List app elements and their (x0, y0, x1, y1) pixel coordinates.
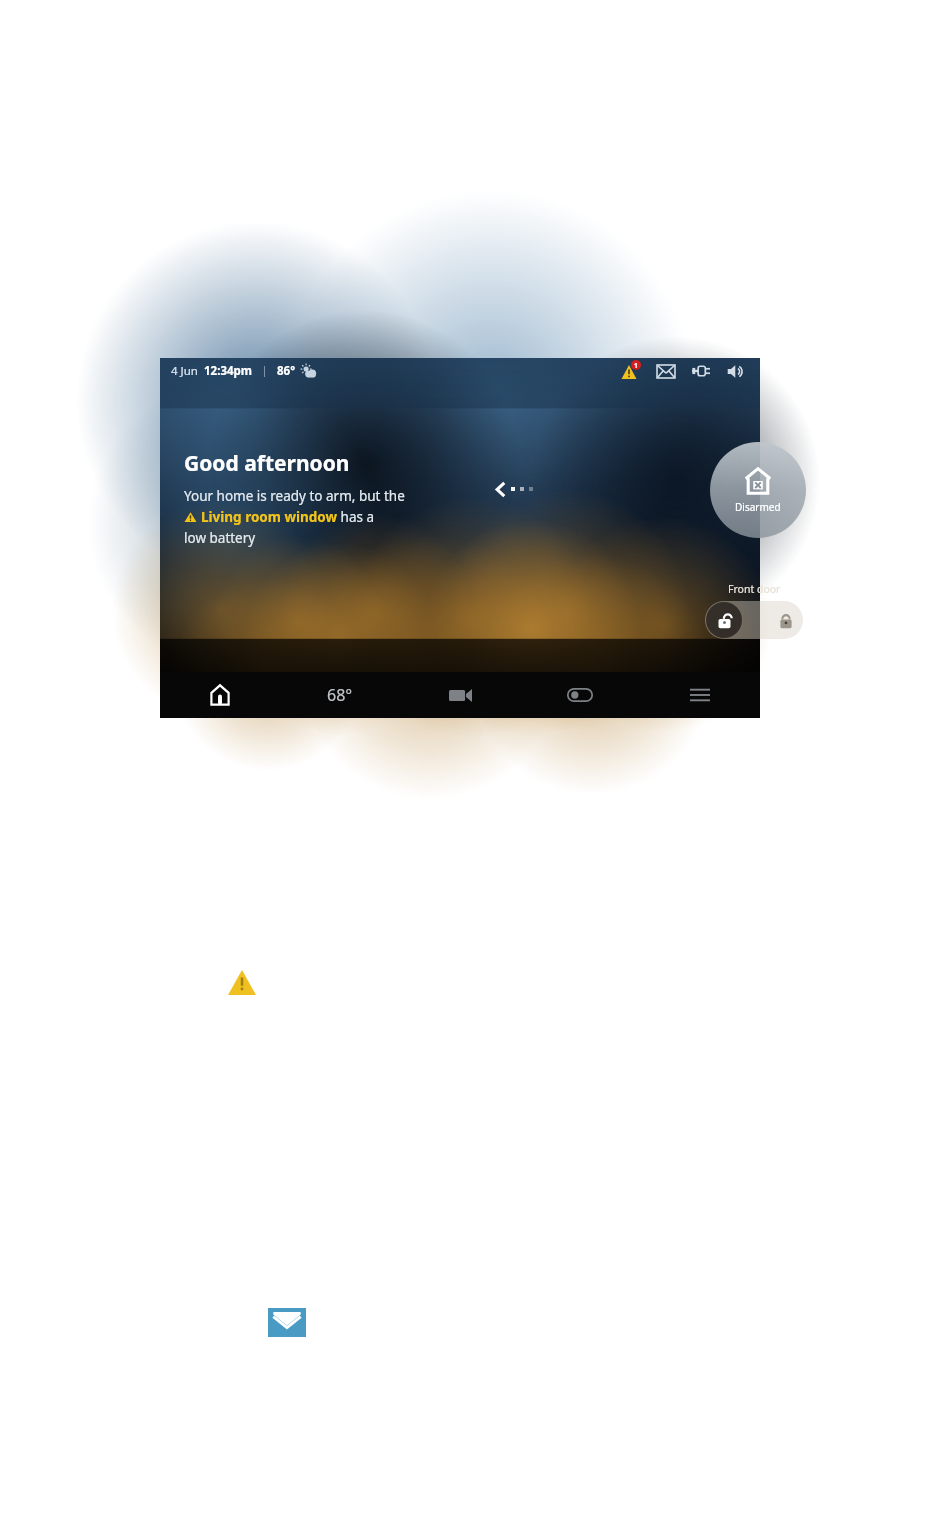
button[interactable]: Menu (640, 672, 760, 718)
button[interactable]: Front door lock (705, 601, 803, 639)
staticText: Your home is ready to arm, but the (184, 487, 405, 505)
staticText: Good afternoon (184, 449, 350, 478)
staticText: 68° (327, 684, 353, 706)
button[interactable]: Messages (653, 358, 679, 384)
button[interactable]: Power (688, 358, 714, 384)
button[interactable]: Automations (520, 672, 640, 718)
button[interactable]: Previous mode (496, 479, 533, 499)
button[interactable]: Thermostat 68 degrees (280, 672, 400, 718)
button[interactable]: Volume (723, 358, 749, 384)
staticText: 12:34pm (204, 363, 253, 379)
button[interactable]: Alerts (618, 358, 644, 384)
button[interactable]: Disarmed (710, 442, 806, 538)
staticText: Front door (728, 582, 781, 596)
staticText: low battery (184, 529, 256, 547)
staticText: 4 Jun (171, 363, 198, 379)
staticText: 86° (277, 363, 296, 379)
staticText: 1 (634, 361, 638, 370)
staticText: Disarmed (735, 500, 781, 514)
button[interactable]: Cameras (400, 672, 520, 718)
staticText: Living room window has a (201, 508, 375, 526)
button[interactable]: Home (160, 672, 280, 718)
